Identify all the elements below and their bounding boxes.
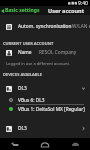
staticText: User account: [48, 7, 85, 14]
staticText: Logged in use a different account.: [6, 61, 70, 66]
button[interactable]: Recent apps: [60, 138, 90, 150]
staticText: 9:40: [78, 0, 88, 6]
button[interactable]: VBus 6: DL3: [0, 96, 90, 104]
button[interactable]: Home: [30, 138, 60, 150]
staticText: Name: [18, 49, 32, 56]
button[interactable]: DL3: [0, 124, 90, 133]
button[interactable]: Back: [0, 138, 30, 150]
button[interactable]: VBus 1: DeltaSol MX [Regular]: [0, 105, 90, 113]
staticText: Autom. synchronisation: [18, 23, 72, 30]
button[interactable]: Autom. synchronisation: [0, 22, 90, 31]
staticText: RESOL Company: [39, 49, 77, 56]
staticText: W/LAN: [72, 23, 88, 30]
staticText: Basic settings: [5, 7, 40, 14]
button[interactable]: DL3: [0, 84, 90, 93]
staticText: VBus 6: DL3: [18, 97, 45, 104]
button[interactable]: Basic settings: [0, 6, 42, 15]
staticText: DL3: [18, 125, 27, 132]
staticText: DEVICES AVAILABLE: [3, 72, 42, 77]
staticText: DL3: [18, 85, 27, 92]
button[interactable]: Name: [0, 48, 90, 57]
staticText: CURRENT USER ACCOUNT: [3, 41, 54, 46]
staticText: VBus 1: DeltaSol MX [Regular]: [18, 106, 85, 113]
